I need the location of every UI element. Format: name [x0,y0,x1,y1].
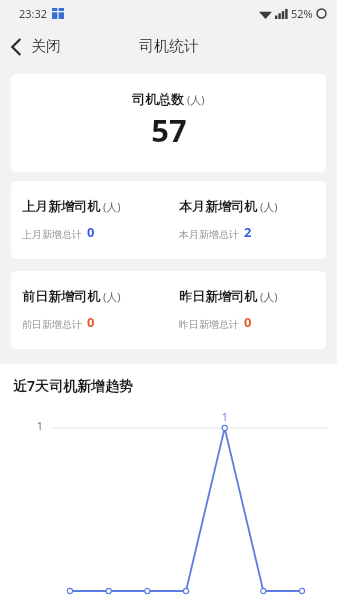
staticText: 0 [87,313,95,331]
button[interactable]: 司机总数 [11,74,326,172]
button[interactable]: Close [0,31,69,62]
staticText: 1 [222,410,228,424]
staticText: (人) [260,289,278,304]
button[interactable]: 上月新增司机 [11,181,168,259]
staticText: 司机统计 [139,37,199,56]
staticText: 昨日新增司机 [179,288,257,304]
staticText: 近7天司机新增趋势 [13,376,134,395]
button[interactable]: 昨日新增司机 [168,271,326,349]
staticText: 上月新增总计 [22,228,82,241]
staticText: 本月新增总计 [179,228,239,241]
staticText: (人) [103,289,121,304]
staticText: 2 [244,223,252,241]
staticText: 关闭 [31,37,61,56]
staticText: 23:32 [19,6,48,21]
staticText: 52% [291,6,313,21]
staticText: 司机总数 [132,91,184,107]
button[interactable]: 本月新增司机 [168,181,326,259]
staticText: 1 [37,419,43,433]
button[interactable]: 前日新增司机 [11,271,168,349]
staticText: (人) [187,92,205,107]
staticText: 0 [87,223,95,241]
staticText: 本月新增司机 [179,198,257,214]
staticText: 0 [244,313,252,331]
staticText: 昨日新增总计 [179,318,239,331]
staticText: 前日新增司机 [22,288,100,304]
staticText: 57 [151,109,187,151]
staticText: 前日新增总计 [22,318,82,331]
staticText: 上月新增司机 [22,198,100,214]
staticText: (人) [103,199,121,214]
staticText: (人) [260,199,278,214]
